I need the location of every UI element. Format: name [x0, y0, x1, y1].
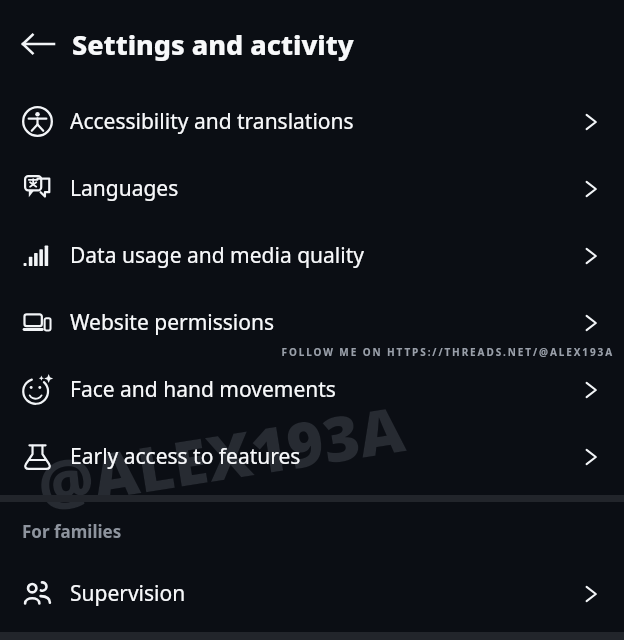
- button[interactable]: Back: [10, 16, 66, 72]
- staticText: Languages: [70, 174, 578, 203]
- button[interactable]: Face and hand movements: [0, 356, 624, 423]
- staticText: Website permissions: [70, 308, 578, 337]
- staticText: For families: [22, 520, 122, 543]
- button[interactable]: Data usage and media quality: [0, 222, 624, 289]
- staticText: Settings and activity: [72, 26, 354, 63]
- staticText: @ALEX193A: [32, 386, 410, 526]
- staticText: Accessibility and translations: [70, 107, 578, 136]
- staticText: FOLLOW ME ON HTTPS://THREADS.NET/@ALEX19…: [0, 345, 614, 359]
- button[interactable]: Supervision: [0, 560, 624, 627]
- staticText: Face and hand movements: [70, 375, 578, 404]
- button[interactable]: Early access to features: [0, 423, 624, 490]
- staticText: Supervision: [70, 579, 578, 608]
- button[interactable]: Website permissions: [0, 289, 624, 356]
- staticText: Data usage and media quality: [70, 241, 578, 270]
- staticText: Early access to features: [70, 442, 578, 471]
- button[interactable]: Languages: [0, 155, 624, 222]
- button[interactable]: Accessibility and translations: [0, 88, 624, 155]
